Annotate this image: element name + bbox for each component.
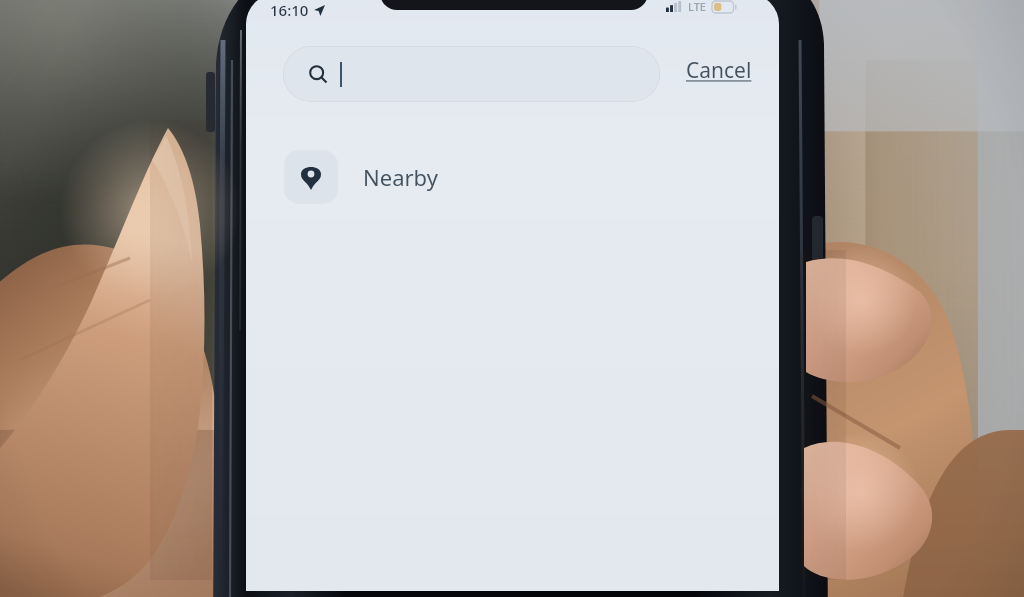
button[interactable] xyxy=(283,46,660,102)
button[interactable]: Nearby location xyxy=(276,140,576,214)
staticText: Cancel xyxy=(686,56,752,85)
staticText: 16:10 xyxy=(270,0,309,20)
button[interactable]: Cancel xyxy=(686,56,752,85)
staticText: Nearby xyxy=(363,162,438,192)
staticText: LTE xyxy=(688,0,706,14)
other: Nearby location xyxy=(284,150,338,204)
